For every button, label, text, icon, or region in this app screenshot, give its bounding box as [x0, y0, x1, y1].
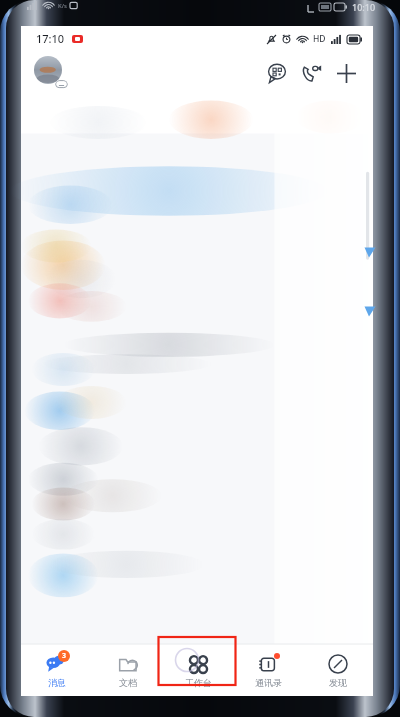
staticText: 10:10: [352, 1, 376, 13]
button[interactable]: Profile: [34, 56, 68, 90]
staticText: 3: [62, 651, 67, 661]
button[interactable]: Add: [328, 55, 364, 91]
button[interactable]: Call: [294, 56, 328, 90]
button[interactable]: Scan: [260, 56, 294, 90]
staticText: 工作台: [185, 677, 212, 688]
staticText: 文档: [119, 677, 137, 688]
staticText: 消息: [48, 677, 66, 688]
button[interactable]: 3: [21, 644, 92, 696]
staticText: 17:10: [36, 31, 65, 46]
staticText: 发现: [329, 677, 347, 688]
staticText: 通讯录: [255, 677, 282, 688]
staticText: HD: [313, 33, 326, 45]
staticText: K/s: [58, 2, 67, 10]
button[interactable]: 文档: [92, 644, 163, 696]
button[interactable]: 通讯录: [233, 644, 303, 696]
button[interactable]: 工作台: [163, 644, 233, 696]
button[interactable]: 发现: [303, 644, 373, 696]
